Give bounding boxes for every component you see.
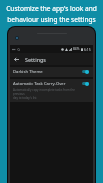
staticText: 84% <box>73 47 80 51</box>
staticText: Automatically copy incomplete tasks from… <box>13 88 79 100</box>
staticText: 6:15 <box>84 47 91 52</box>
staticText: Settings <box>25 56 46 63</box>
staticText: Automatic Task Carry-Over <box>13 81 66 87</box>
button[interactable]: Darkish Theme <box>10 67 93 77</box>
staticText: behaviour using the settings page <box>3 15 100 32</box>
button[interactable]: Darkish Theme toggle <box>81 69 90 74</box>
staticText: Customize the app's look and <box>6 4 97 13</box>
button[interactable]: Back <box>12 55 21 64</box>
button[interactable]: Automatic Task Carry-Over <box>10 79 93 102</box>
staticText: Darkish Theme <box>13 69 43 75</box>
button[interactable]: Automatic Task Carry-Over toggle <box>81 81 90 86</box>
